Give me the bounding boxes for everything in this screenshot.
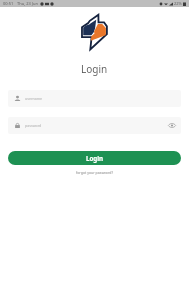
staticText: 00:51 bbox=[3, 1, 14, 6]
staticText: Thu, 23 Jun bbox=[17, 1, 38, 6]
staticText: Login bbox=[86, 154, 104, 162]
button[interactable]: password bbox=[8, 117, 181, 134]
staticText: 22% bbox=[174, 1, 182, 6]
button[interactable]: Show password bbox=[168, 122, 176, 129]
button[interactable]: username bbox=[8, 90, 181, 107]
button[interactable]: Login bbox=[8, 151, 181, 165]
button[interactable]: forgot your password? bbox=[76, 170, 113, 175]
staticText: username bbox=[25, 96, 43, 101]
staticText: Login bbox=[81, 62, 108, 76]
staticText: password bbox=[25, 123, 42, 128]
